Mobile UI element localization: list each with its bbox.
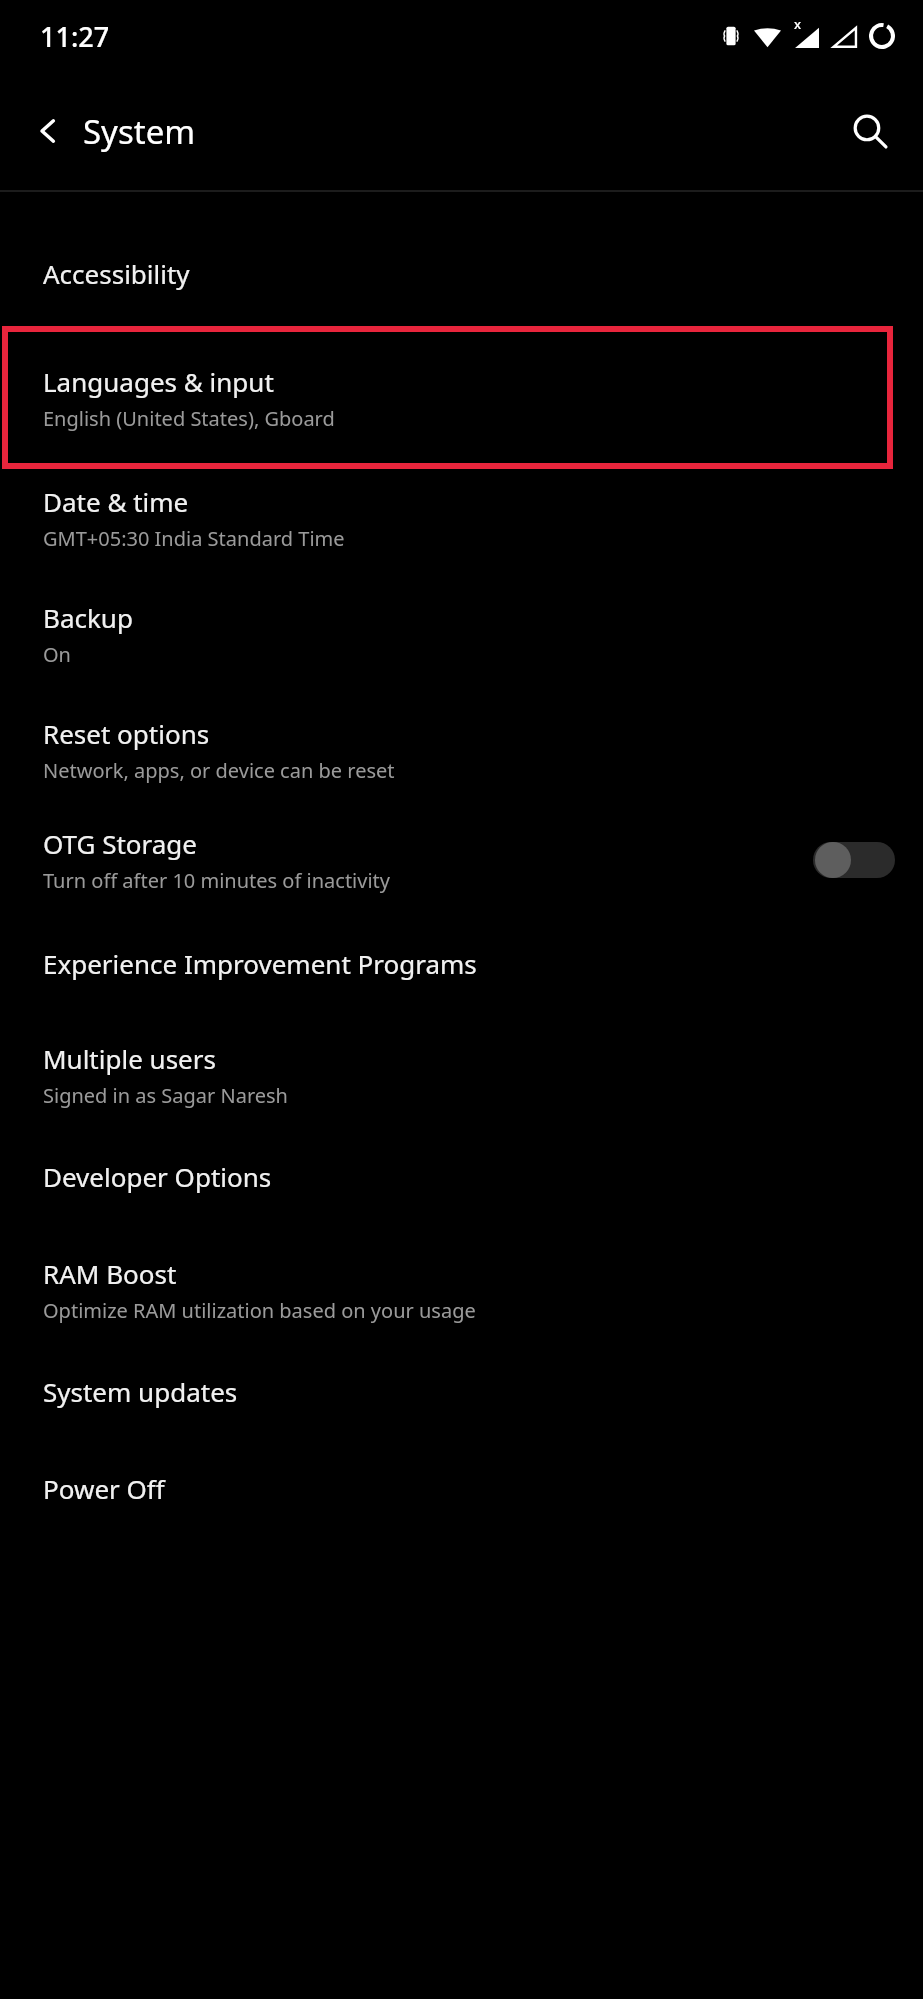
staticText: Developer Options	[43, 1159, 272, 1194]
button[interactable]: Accessibility	[0, 256, 923, 291]
button[interactable]: Date & time	[0, 484, 923, 552]
button[interactable]: OTG Storage	[0, 826, 923, 894]
button[interactable]: Backup	[0, 600, 923, 668]
staticText: Optimize RAM utilization based on your u…	[43, 1297, 476, 1324]
button[interactable]: Developer Options	[0, 1159, 923, 1194]
staticText: Experience Improvement Programs	[43, 946, 477, 981]
staticText: Network, apps, or device can be reset	[43, 757, 395, 784]
button[interactable]: Experience Improvement Programs	[0, 946, 923, 981]
button[interactable]: Multiple users	[0, 1041, 923, 1109]
staticText: System	[83, 109, 196, 154]
button[interactable]: System updates	[0, 1374, 923, 1409]
staticText: OTG Storage	[43, 826, 197, 861]
staticText: RAM Boost	[43, 1256, 177, 1291]
staticText: Signed in as Sagar Naresh	[43, 1082, 288, 1109]
button[interactable]: Languages & input	[5, 329, 890, 466]
staticText: Power Off	[43, 1471, 165, 1506]
staticText: Multiple users	[43, 1041, 216, 1076]
staticText: x	[794, 15, 802, 33]
staticText: Accessibility	[43, 256, 190, 291]
staticText: GMT+05:30 India Standard Time	[43, 525, 345, 552]
button[interactable]: Power Off	[0, 1471, 923, 1506]
staticText: On	[43, 641, 71, 668]
button[interactable]: RAM Boost	[0, 1256, 923, 1324]
staticText: Backup	[43, 600, 133, 635]
staticText: Date & time	[43, 484, 189, 519]
staticText: Languages & input	[43, 364, 274, 399]
button[interactable]: OTG Storage toggle	[813, 840, 895, 880]
staticText: Turn off after 10 minutes of inactivity	[43, 867, 390, 894]
button[interactable]: Back	[20, 103, 76, 159]
staticText: System updates	[43, 1374, 238, 1409]
button[interactable]: Search	[839, 100, 901, 162]
button[interactable]: Reset options	[0, 716, 923, 784]
staticText: 11:27	[40, 18, 110, 55]
staticText: Reset options	[43, 716, 210, 751]
staticText: English (United States), Gboard	[43, 405, 335, 432]
